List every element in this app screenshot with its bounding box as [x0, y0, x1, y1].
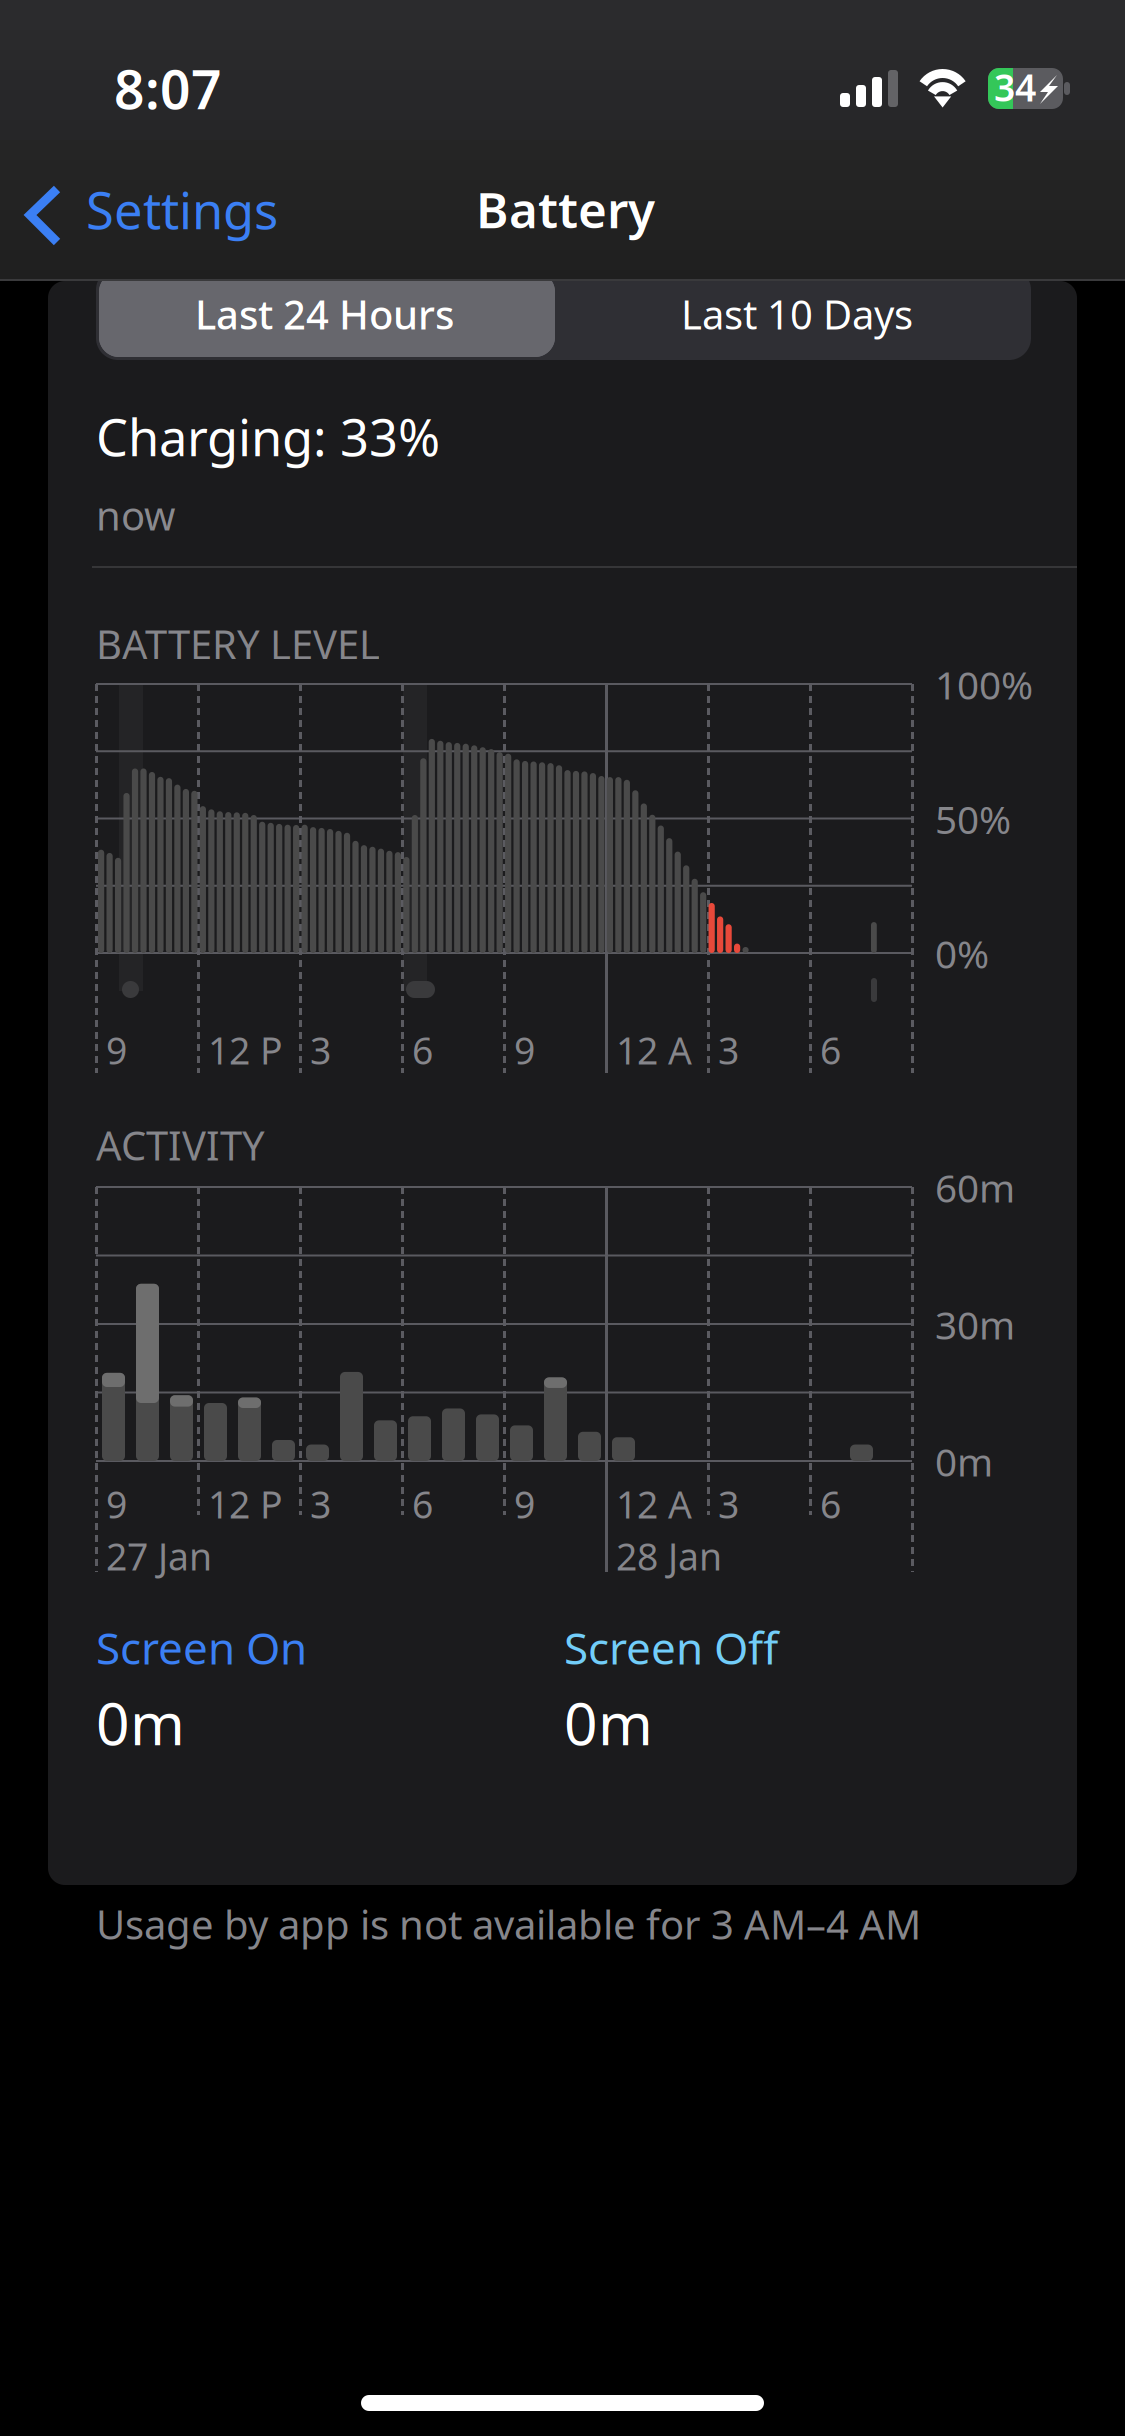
staticText: 28 Jan	[616, 1531, 722, 1581]
staticText: 50%	[935, 793, 1011, 845]
button[interactable]: Settings	[30, 192, 280, 254]
staticText: 6	[820, 1479, 841, 1529]
staticText: 8:07	[114, 53, 222, 124]
staticText: Last 24 Hours	[195, 287, 454, 340]
button[interactable]: Last 24 Hours	[99, 272, 555, 357]
button[interactable]: Screen Off	[564, 1632, 844, 1680]
staticText: Battery	[476, 176, 655, 242]
staticText: Last 10 Days	[681, 287, 913, 340]
button[interactable]: Last 10 Days	[564, 272, 1020, 357]
staticText: 6	[412, 1025, 433, 1075]
staticText: Usage by app is not available for 3 AM–4…	[96, 1897, 921, 1950]
staticText: 60m	[935, 1162, 1015, 1213]
staticText: 3	[718, 1025, 739, 1075]
staticText: Settings	[86, 176, 278, 243]
staticText: 9	[106, 1479, 127, 1529]
staticText: 30m	[935, 1299, 1015, 1350]
staticText: 6	[820, 1025, 841, 1075]
staticText: 12 P	[208, 1025, 283, 1075]
staticText: 0%	[935, 928, 989, 979]
staticText: 3	[310, 1025, 331, 1075]
staticText: 100%	[935, 659, 1033, 710]
staticText: 9	[514, 1025, 535, 1075]
staticText: 12 A	[616, 1025, 692, 1075]
staticText: 9	[514, 1479, 535, 1529]
staticText: Charging: 33%	[96, 403, 440, 470]
button[interactable]: Screen On	[96, 1632, 376, 1680]
staticText: Screen On	[96, 1618, 307, 1676]
staticText: 9	[106, 1025, 127, 1075]
staticText: 3	[718, 1479, 739, 1529]
staticText: 34	[994, 62, 1036, 112]
staticText: ACTIVITY	[96, 1118, 265, 1171]
staticText: 0m	[935, 1436, 993, 1487]
staticText: BATTERY LEVEL	[96, 617, 380, 670]
staticText: 0m	[564, 1683, 653, 1761]
staticText: 3	[310, 1479, 331, 1529]
staticText: 12 P	[208, 1479, 283, 1529]
staticText: 0m	[96, 1683, 185, 1761]
staticText: 12 A	[616, 1479, 692, 1529]
staticText: 27 Jan	[106, 1531, 212, 1581]
staticText: Screen Off	[564, 1618, 778, 1676]
staticText: now	[96, 488, 175, 541]
staticText: 6	[412, 1479, 433, 1529]
